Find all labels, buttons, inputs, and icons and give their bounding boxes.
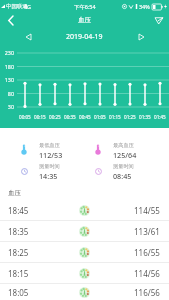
staticText: 血压	[8, 189, 21, 197]
button[interactable]: 18:45	[0, 200, 169, 220]
staticText: 00:35	[64, 114, 76, 120]
staticText: 01:15	[109, 114, 121, 120]
button[interactable]: Previous day	[19, 28, 37, 46]
button[interactable]: Next day	[132, 28, 150, 46]
staticText: 18:25	[8, 247, 29, 258]
button[interactable]: Share	[149, 12, 169, 28]
staticText: 112/53	[39, 150, 63, 160]
staticText: 113/61	[134, 226, 160, 237]
staticText: 01:25	[124, 114, 136, 120]
staticText: 18:15	[8, 268, 29, 279]
button[interactable]: Back	[0, 12, 20, 28]
staticText: 01:45	[154, 114, 166, 120]
button[interactable]: 18:25	[0, 242, 169, 262]
staticText: 114/56	[134, 268, 160, 279]
staticText: 18:45	[8, 205, 29, 216]
staticText: 00:45	[79, 114, 91, 120]
staticText: 180	[0, 63, 14, 70]
staticText: 测量时间	[39, 163, 60, 170]
staticText: 18:35	[8, 226, 29, 237]
staticText: 116/56	[134, 287, 160, 298]
staticText: 中国联通	[6, 3, 28, 10]
staticText: 114/55	[134, 205, 160, 216]
staticText: 30	[0, 103, 14, 110]
staticText: 最高血压	[113, 142, 134, 149]
staticText: 130	[0, 76, 14, 83]
button[interactable]: 18:15	[0, 263, 169, 283]
staticText: 01:35	[139, 114, 151, 120]
staticText: 4G	[24, 3, 32, 10]
staticText: 2019-04-19	[66, 32, 103, 42]
staticText: 测量时间	[113, 163, 134, 170]
staticText: 34%	[139, 3, 150, 10]
button[interactable]: 18:05	[0, 284, 169, 300]
staticText: 00:15	[34, 114, 46, 120]
staticText: 下午6:54	[74, 3, 96, 10]
staticText: 00:25	[49, 114, 61, 120]
staticText: 125/64	[113, 150, 137, 160]
button[interactable]: 18:35	[0, 221, 169, 241]
staticText: 血压	[78, 16, 91, 24]
staticText: 18:05	[8, 287, 29, 298]
staticText: 80	[0, 90, 14, 97]
staticText: 最低血压	[39, 142, 60, 149]
staticText: 116/55	[134, 247, 160, 258]
staticText: 08:45	[113, 171, 132, 181]
staticText: 01:05	[94, 114, 106, 120]
staticText: 14:35	[39, 171, 58, 181]
staticText: 230	[0, 49, 14, 56]
staticText: 00:05	[19, 114, 31, 120]
